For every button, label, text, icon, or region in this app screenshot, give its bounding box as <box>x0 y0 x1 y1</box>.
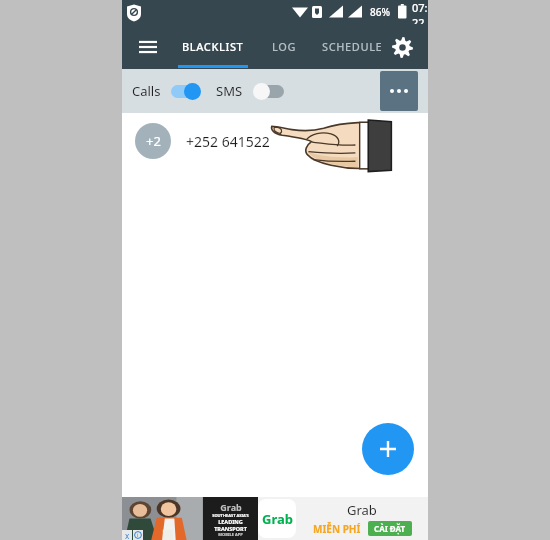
staticText: Calls <box>132 82 161 100</box>
staticText: CÀI ĐẶT <box>374 523 406 534</box>
button[interactable]: Open navigation menu <box>130 29 166 65</box>
staticText: +2 <box>146 132 161 150</box>
button[interactable]: LOG <box>260 24 308 69</box>
staticText: Grab <box>347 501 377 519</box>
staticText: BLACKLIST <box>182 39 244 54</box>
staticText: Grab <box>262 510 293 528</box>
button[interactable]: Grab <box>122 497 428 540</box>
staticText: SMS <box>216 82 243 100</box>
button[interactable]: Settings <box>384 29 420 65</box>
staticText: 86% <box>370 5 390 19</box>
staticText: x <box>125 530 130 540</box>
staticText: MIỄN PHÍ <box>313 522 361 536</box>
staticText: i <box>137 531 139 539</box>
staticText: Grab <box>220 501 242 513</box>
staticText: LOG <box>272 39 297 54</box>
button[interactable]: Calls <box>132 82 202 100</box>
staticText: 07:22 <box>412 0 428 24</box>
button[interactable]: CÀI ĐẶT <box>374 523 406 534</box>
button[interactable]: SCHEDULE <box>314 24 390 69</box>
staticText: SCHEDULE <box>322 39 383 54</box>
staticText: +252 641522 <box>186 132 270 151</box>
button[interactable]: Add number to blacklist <box>362 423 414 475</box>
staticText: LEADING TRANSPORT <box>203 518 258 532</box>
button[interactable]: +2 <box>122 113 428 169</box>
button[interactable]: BLACKLIST <box>176 24 250 69</box>
staticText: MOBILE APP <box>218 532 243 537</box>
button[interactable]: More options <box>380 71 418 111</box>
button[interactable]: SMS <box>216 82 284 100</box>
staticText: SOUTHEAST ASIA'S <box>212 513 249 518</box>
